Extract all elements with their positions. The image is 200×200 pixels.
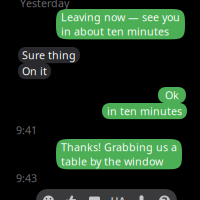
button[interactable]: Sure thing bbox=[18, 47, 80, 63]
staticText: Yesterday bbox=[20, 0, 69, 10]
staticText: Leaving now — see you in about ten minut… bbox=[61, 10, 180, 38]
staticText: Thanks! Grabbing us a table by the windo… bbox=[61, 140, 177, 168]
staticText: 9:41 bbox=[16, 123, 37, 137]
staticText: Ok bbox=[165, 88, 179, 102]
button[interactable]: Thanks! Grabbing us a table by the windo… bbox=[56, 139, 182, 169]
staticText: 9:43 bbox=[16, 171, 37, 185]
staticText: HA bbox=[110, 194, 125, 200]
button[interactable]: Dictate bbox=[130, 189, 153, 200]
button[interactable]: On it bbox=[18, 63, 51, 79]
staticText: On it bbox=[22, 64, 47, 78]
button[interactable]: Photos bbox=[83, 189, 106, 200]
button[interactable]: Leaving now — see you in about ten minut… bbox=[56, 9, 185, 39]
staticText: Sure thing bbox=[22, 48, 76, 62]
staticText: in ten minutes bbox=[107, 104, 182, 118]
button[interactable]: in ten minutes bbox=[102, 103, 187, 119]
button[interactable]: Send a Tapback bbox=[60, 189, 83, 200]
button[interactable]: Ok bbox=[158, 87, 186, 103]
button[interactable]: Emoji bbox=[37, 189, 60, 200]
button[interactable]: Smart Reply HA bbox=[106, 189, 130, 200]
staticText: ? bbox=[162, 194, 167, 200]
button[interactable]: More options bbox=[153, 189, 176, 200]
